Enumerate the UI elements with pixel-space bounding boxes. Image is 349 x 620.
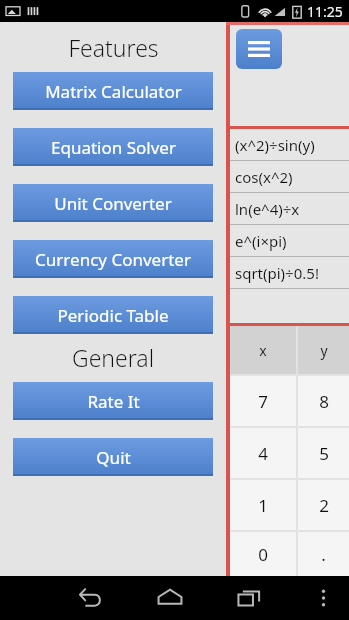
- button[interactable]: Quit: [13, 438, 213, 476]
- staticText: Features: [68, 32, 159, 63]
- button[interactable]: Matrix Calculator: [13, 72, 213, 110]
- button[interactable]: ln(e^4)÷x: [230, 193, 349, 224]
- staticText: Currency Converter: [35, 248, 191, 271]
- staticText: Rate It: [87, 390, 140, 413]
- staticText: 11:25: [307, 2, 343, 21]
- staticText: (x^2)÷sin(y): [235, 135, 315, 155]
- button[interactable]: 7: [230, 376, 296, 426]
- button[interactable]: (x^2)÷sin(y): [230, 129, 349, 160]
- button[interactable]: Equation Solver: [13, 128, 213, 166]
- button[interactable]: More options: [303, 578, 343, 618]
- button[interactable]: cos(x^2): [230, 161, 349, 192]
- button[interactable]: 8: [298, 376, 349, 426]
- staticText: Periodic Table: [57, 304, 169, 327]
- button[interactable]: sqrt(pi)÷0.5!: [230, 257, 349, 288]
- button[interactable]: Menu: [236, 29, 282, 69]
- button[interactable]: 1: [230, 480, 296, 530]
- button[interactable]: x: [230, 326, 296, 374]
- button[interactable]: Periodic Table: [13, 296, 213, 334]
- staticText: x: [259, 341, 267, 360]
- staticText: 1: [258, 494, 268, 517]
- button[interactable]: e^(i×pi): [230, 225, 349, 256]
- button[interactable]: Unit Converter: [13, 184, 213, 222]
- staticText: 0: [258, 543, 268, 566]
- staticText: Unit Converter: [54, 192, 172, 215]
- button[interactable]: Home: [144, 576, 196, 620]
- staticText: General: [72, 342, 154, 373]
- button[interactable]: y: [298, 326, 349, 374]
- staticText: cos(x^2): [235, 167, 293, 187]
- button[interactable]: 0: [230, 532, 296, 576]
- staticText: ln(e^4)÷x: [235, 199, 300, 219]
- staticText: 2: [319, 494, 329, 517]
- staticText: 4: [258, 442, 268, 465]
- staticText: Matrix Calculator: [45, 80, 182, 103]
- staticText: y: [320, 341, 328, 360]
- staticText: sqrt(pi)÷0.5!: [235, 263, 319, 283]
- staticText: 8: [319, 390, 329, 413]
- button[interactable]: .: [298, 532, 349, 576]
- button[interactable]: Back: [64, 576, 116, 620]
- staticText: 5: [319, 442, 329, 465]
- staticText: e^(i×pi): [235, 231, 287, 251]
- staticText: Equation Solver: [51, 136, 176, 159]
- button[interactable]: 2: [298, 480, 349, 530]
- staticText: 7: [258, 390, 268, 413]
- button[interactable]: 5: [298, 428, 349, 478]
- button[interactable]: 4: [230, 428, 296, 478]
- staticText: .: [321, 543, 326, 566]
- button[interactable]: Currency Converter: [13, 240, 213, 278]
- staticText: Quit: [96, 446, 131, 469]
- button[interactable]: Rate It: [13, 382, 213, 420]
- button[interactable]: Recent apps: [223, 576, 275, 620]
